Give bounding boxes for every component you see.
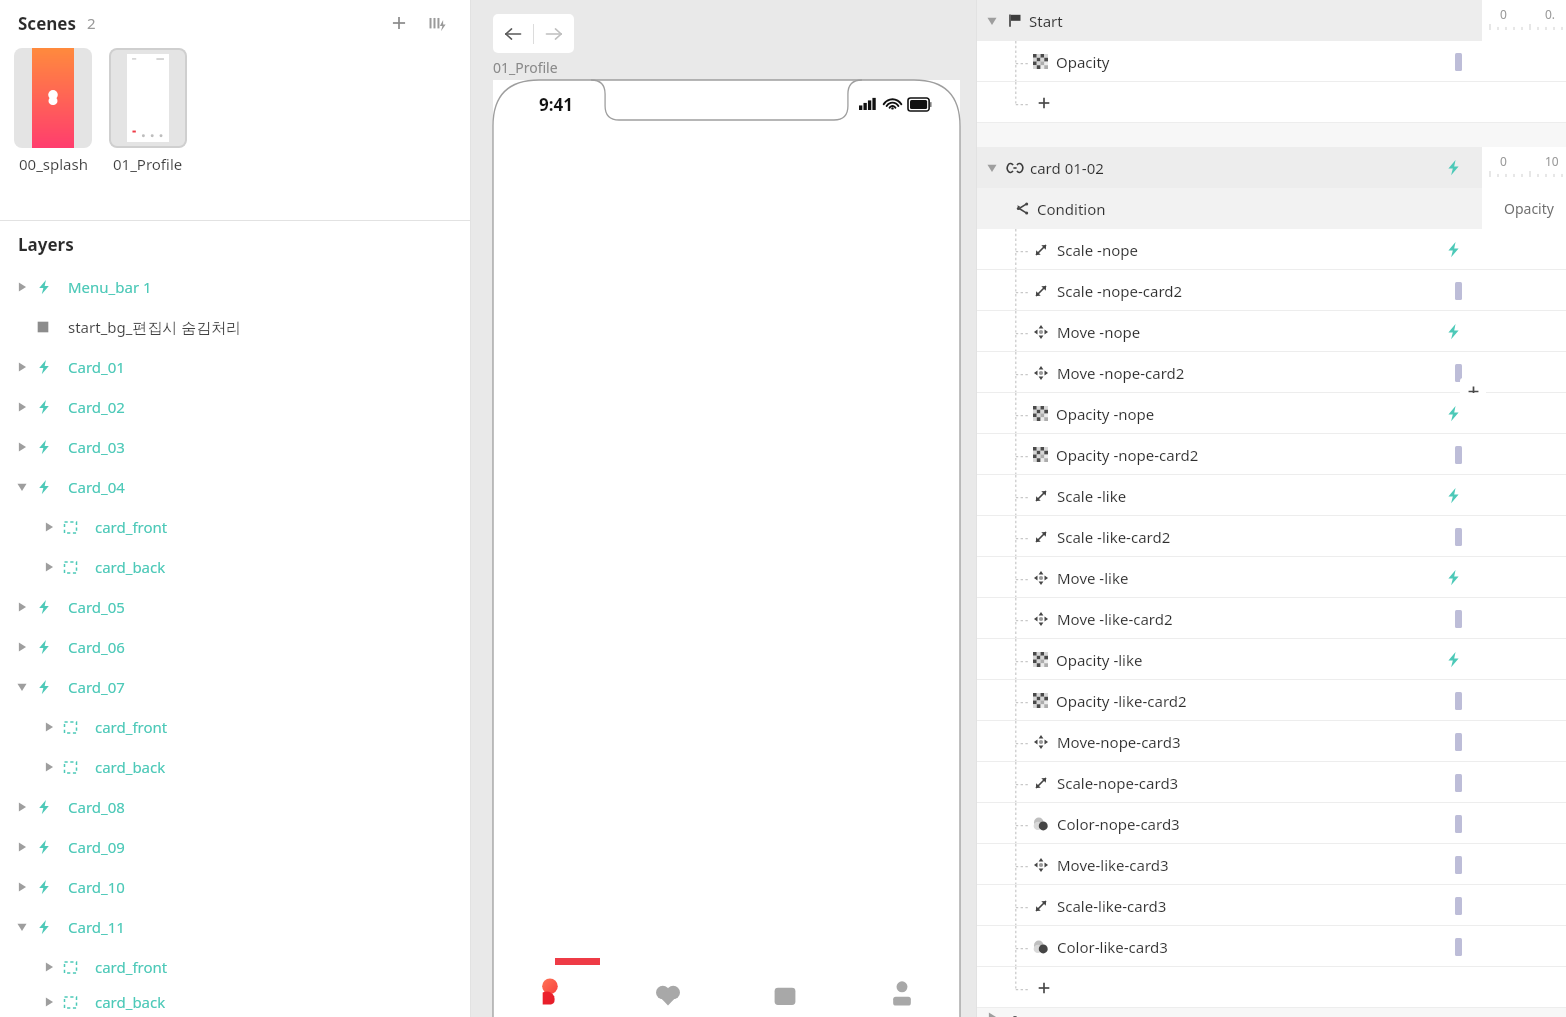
button[interactable]	[109, 48, 187, 148]
button[interactable]: Add action	[1460, 378, 1486, 404]
button[interactable]: Move-nope-card3	[977, 721, 1566, 762]
button[interactable]	[14, 48, 92, 148]
button[interactable]: Scale -like-card2	[977, 516, 1566, 557]
staticText: Color-like-card3	[1057, 937, 1168, 957]
staticText: Opacity -like	[1056, 650, 1143, 670]
button[interactable]: Likes	[609, 979, 726, 1017]
button[interactable]: card_back	[0, 547, 470, 587]
button[interactable]: Move-like-card3	[977, 844, 1566, 885]
button[interactable]: start_bg_편집시 숨김처리	[0, 307, 470, 347]
staticText: 0	[1500, 153, 1507, 169]
staticText: 01_Profile	[493, 58, 558, 77]
staticText: Card_10	[68, 877, 125, 897]
button[interactable]: Scale-nope-card3	[977, 762, 1566, 803]
button[interactable]: Scale -nope-card2	[977, 270, 1566, 311]
staticText: card_front	[95, 517, 168, 537]
staticText: Move -nope-card2	[1057, 363, 1185, 383]
staticText: Card_03	[68, 437, 125, 457]
button[interactable]: Start	[977, 0, 1566, 41]
staticText: Card_01	[68, 357, 125, 377]
button[interactable]: Opacity -nope-card2	[977, 434, 1566, 475]
button[interactable]: Profile	[493, 979, 609, 1017]
staticText: Move -like	[1057, 568, 1129, 588]
staticText: 9:41	[539, 93, 573, 116]
button[interactable]: Color-nope-card3	[977, 803, 1566, 844]
button[interactable]: Scale -like	[977, 475, 1566, 516]
staticText: Card_08	[68, 797, 125, 817]
staticText: card_back	[95, 557, 166, 577]
button[interactable]: card_front	[0, 707, 470, 747]
button[interactable]: Card_02	[0, 387, 470, 427]
staticText: Opacity -like-card2	[1056, 691, 1187, 711]
button[interactable]: Scale -nope	[977, 229, 1566, 270]
staticText: Move-like-card3	[1057, 855, 1169, 875]
staticText: start_bg_편집시 숨김처리	[68, 317, 242, 337]
staticText: Scale -like-card2	[1057, 527, 1171, 547]
staticText: 0.	[1545, 6, 1556, 22]
staticText: Menu_bar 1	[68, 277, 152, 297]
button[interactable]: Condition	[977, 188, 1566, 229]
button[interactable]: card_back	[0, 747, 470, 787]
button[interactable]: Card_07	[0, 667, 470, 707]
button[interactable]: Move -nope	[977, 311, 1566, 352]
staticText: Opacity -nope-card2	[1056, 445, 1199, 465]
staticText: Card_06	[68, 637, 125, 657]
button[interactable]: card_back	[0, 987, 470, 1017]
staticText: 01_Profile	[113, 154, 183, 174]
button[interactable]: Card_03	[0, 427, 470, 467]
button[interactable]: Menu_bar 1	[0, 267, 470, 307]
button[interactable]: Move -nope-card2	[977, 352, 1566, 393]
button[interactable]: card 01-02	[977, 147, 1566, 188]
staticText: Layers	[18, 233, 74, 256]
button[interactable]: Messages	[726, 979, 843, 1017]
staticText: 0	[1500, 6, 1507, 22]
staticText: Scale -nope-card2	[1057, 281, 1183, 301]
staticText: Scenes	[18, 12, 77, 35]
button[interactable]: Move -like-card2	[977, 598, 1566, 639]
button[interactable]: Scene settings	[422, 8, 452, 38]
button[interactable]: Color-like-card3	[977, 926, 1566, 967]
button[interactable]: Account	[843, 979, 960, 1017]
staticText: 10	[1545, 153, 1559, 169]
button[interactable]: card_front	[0, 947, 470, 987]
staticText: Card_04	[68, 477, 125, 497]
button[interactable]: Opacity -nope	[977, 393, 1566, 434]
staticText: Color-nope-card3	[1057, 814, 1180, 834]
staticText: Scale-like-card3	[1057, 896, 1167, 916]
button[interactable]: Card_06	[0, 627, 470, 667]
staticText: Card_02	[68, 397, 125, 417]
button[interactable]: Forward	[534, 14, 574, 53]
staticText: card_front	[95, 957, 168, 977]
button[interactable]: Card_05	[0, 587, 470, 627]
staticText: card_back	[95, 757, 166, 777]
button[interactable]: Opacity -like	[977, 639, 1566, 680]
staticText: Scale-nope-card3	[1057, 773, 1179, 793]
staticText: Start	[1029, 11, 1063, 31]
button[interactable]: Card_11	[0, 907, 470, 947]
staticText: Card_05	[68, 597, 125, 617]
staticText: Move -nope	[1057, 322, 1141, 342]
staticText: Move -like-card2	[1057, 609, 1173, 629]
button[interactable]: Move -like	[977, 557, 1566, 598]
button[interactable]: Card_04	[0, 467, 470, 507]
button[interactable]: Opacity -like-card2	[977, 680, 1566, 721]
button[interactable]: Add	[977, 82, 1566, 123]
button[interactable]: Opacity	[977, 41, 1566, 82]
button[interactable]: Card_10	[0, 867, 470, 907]
button[interactable]: Add scene	[384, 8, 414, 38]
staticText: Move-nope-card3	[1057, 732, 1181, 752]
staticText: Opacity -nope	[1056, 404, 1155, 424]
staticText: Scale -like	[1057, 486, 1127, 506]
button[interactable]: Back	[493, 14, 533, 53]
staticText: Opacity	[1504, 199, 1554, 218]
staticText: 00_splash	[19, 154, 88, 174]
button[interactable]: Add	[977, 967, 1566, 1008]
button[interactable]: Card_01	[0, 347, 470, 387]
button[interactable]: Card_09	[0, 827, 470, 867]
staticText: 2	[87, 13, 96, 33]
button[interactable]: Card_08	[0, 787, 470, 827]
staticText: card_front	[95, 717, 168, 737]
button[interactable]: card_front	[0, 507, 470, 547]
staticText: card_back	[95, 992, 166, 1012]
button[interactable]: Scale-like-card3	[977, 885, 1566, 926]
